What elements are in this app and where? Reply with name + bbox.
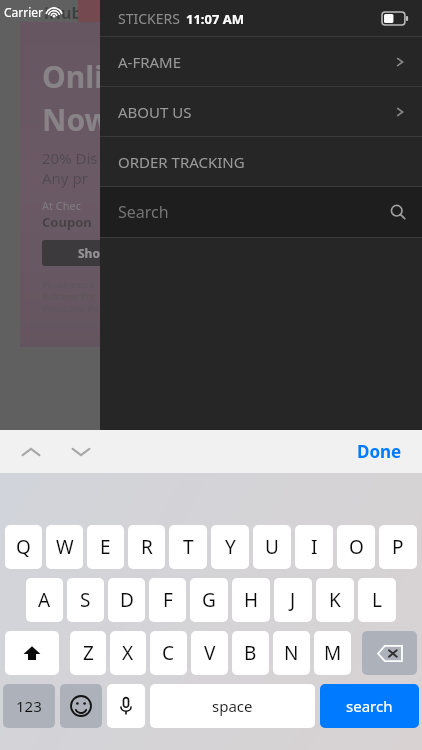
button[interactable]: Emoji <box>60 684 102 728</box>
button[interactable]: A-FRAME <box>100 37 422 86</box>
button[interactable]: Y <box>211 525 249 569</box>
staticText: C <box>162 640 175 666</box>
staticText: B <box>244 640 257 666</box>
button[interactable]: Next <box>70 445 92 459</box>
button[interactable]: G <box>190 578 228 622</box>
staticText: N <box>284 640 299 666</box>
staticText: W <box>56 534 74 560</box>
staticText: O <box>349 534 364 560</box>
staticText: S <box>80 587 91 613</box>
button[interactable]: A <box>26 578 63 622</box>
staticText: ORDER TRACKING <box>118 152 245 172</box>
button[interactable]: H <box>232 578 270 622</box>
staticText: X <box>122 640 134 666</box>
staticText: ABOUT US <box>118 102 192 122</box>
staticText: A-FRAME <box>118 52 182 72</box>
button[interactable]: W <box>46 525 83 569</box>
staticText: A <box>38 587 51 613</box>
staticText: At Chec <box>42 198 82 213</box>
button[interactable]: Z <box>70 631 106 675</box>
staticText: V <box>204 640 216 666</box>
button[interactable]: T <box>169 525 207 569</box>
staticText: K <box>329 587 341 613</box>
staticText: I <box>311 534 318 560</box>
staticText: 123 <box>16 696 42 716</box>
button[interactable]: Dictation <box>107 684 145 728</box>
button[interactable]: C <box>150 631 187 675</box>
staticText: Search <box>118 201 169 223</box>
button[interactable]: Backspace <box>362 631 417 675</box>
staticText: R <box>141 534 153 560</box>
staticText: P <box>392 534 404 560</box>
staticText: Carrier <box>4 4 44 20</box>
staticText: Shoppin <box>78 245 127 261</box>
staticText: H <box>244 587 259 613</box>
button[interactable]: B <box>232 631 269 675</box>
staticText: 20% Dis <box>42 148 98 168</box>
button[interactable]: S <box>67 578 104 622</box>
button[interactable]: ORDER TRACKING <box>100 137 422 186</box>
staticText: E <box>100 534 111 560</box>
button[interactable]: 123 <box>3 684 55 728</box>
staticText: Y <box>225 534 236 560</box>
button[interactable]: F <box>149 578 186 622</box>
staticText: Z <box>83 640 94 666</box>
staticText: U <box>265 534 279 560</box>
button[interactable]: D <box>108 578 145 622</box>
button[interactable]: L <box>358 578 396 622</box>
button[interactable]: Q <box>5 525 42 569</box>
staticText: F <box>163 587 173 613</box>
staticText: T <box>183 534 194 560</box>
button[interactable]: E <box>87 525 124 569</box>
button[interactable]: J <box>274 578 312 622</box>
staticText: Q <box>16 534 31 560</box>
button[interactable]: I <box>295 525 333 569</box>
staticText: Done <box>357 440 402 463</box>
button[interactable]: ABOUT US <box>100 87 422 136</box>
staticText: Now <box>42 99 111 140</box>
button[interactable]: Previous <box>20 445 42 459</box>
staticText: search <box>346 696 393 716</box>
staticText: Any pr <box>42 168 88 188</box>
staticText: space <box>212 696 253 716</box>
button[interactable]: M <box>314 631 351 675</box>
other: Search <box>390 204 406 220</box>
button[interactable]: R <box>128 525 165 569</box>
staticText: iHub <box>44 2 82 24</box>
staticText: G <box>202 587 216 613</box>
button[interactable]: P <box>379 525 417 569</box>
staticText: 11:07 AM <box>186 10 245 28</box>
staticText: Coupon <box>42 213 92 231</box>
staticText: D <box>120 587 134 613</box>
staticText: STICKERS <box>118 9 180 28</box>
button[interactable]: search <box>320 684 419 728</box>
staticText: M <box>324 640 342 666</box>
button[interactable]: N <box>273 631 310 675</box>
staticText: J <box>290 587 296 613</box>
button[interactable]: X <box>110 631 146 675</box>
button[interactable]: V <box>191 631 228 675</box>
staticText: L <box>372 587 382 613</box>
button[interactable]: space <box>150 684 315 728</box>
button[interactable]: O <box>337 525 375 569</box>
button[interactable]: Shift <box>5 631 59 675</box>
button[interactable]: U <box>253 525 291 569</box>
button[interactable]: Done <box>351 436 408 467</box>
button[interactable]: Search <box>100 187 422 237</box>
staticText: Onli <box>42 56 104 97</box>
button[interactable]: K <box>316 578 354 622</box>
